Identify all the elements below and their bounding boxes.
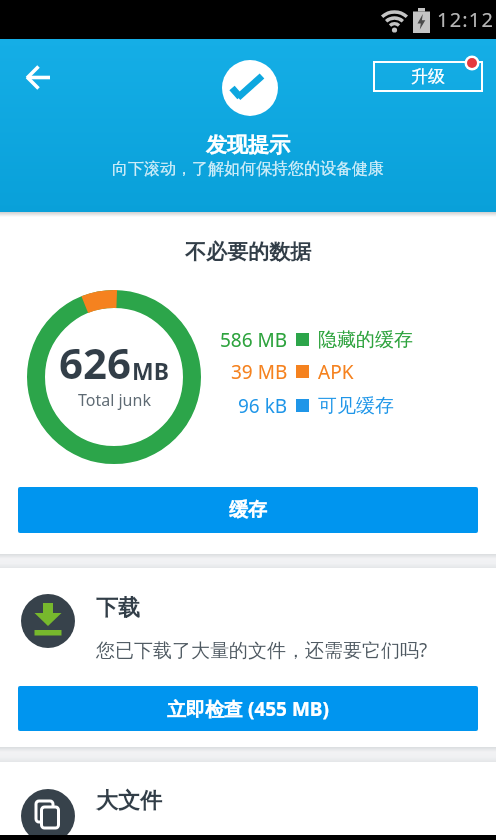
staticText: 立即检查 (455 MB) <box>167 696 329 722</box>
staticText: 可见缓存 <box>318 394 394 418</box>
button[interactable]: 立即检查 (455 MB) <box>18 686 478 731</box>
staticText: 缓存 <box>229 498 267 522</box>
button[interactable]: 升级 <box>373 61 483 92</box>
button[interactable] <box>12 51 64 103</box>
staticText: 96 kB <box>238 393 288 419</box>
staticText: 12:12 <box>437 6 495 33</box>
staticText: 不必要的数据 <box>185 239 311 265</box>
staticText: MB <box>132 355 169 386</box>
button[interactable]: 缓存 <box>18 487 478 533</box>
staticText: APK <box>318 359 354 385</box>
staticText: 发现提示 <box>206 132 290 158</box>
staticText: 39 MB <box>231 359 288 385</box>
staticText: 您已下载了大量的文件，还需要它们吗? <box>96 637 428 663</box>
staticText: 下载 <box>96 594 140 622</box>
staticText: 586 MB <box>220 327 288 353</box>
staticText: 隐藏的缓存 <box>318 328 413 352</box>
staticText: 626 <box>59 334 132 390</box>
staticText: 升级 <box>411 66 445 87</box>
staticText: Total junk <box>78 389 151 411</box>
staticText: 大文件 <box>96 787 162 815</box>
staticText: 向下滚动，了解如何保持您的设备健康 <box>112 159 384 179</box>
